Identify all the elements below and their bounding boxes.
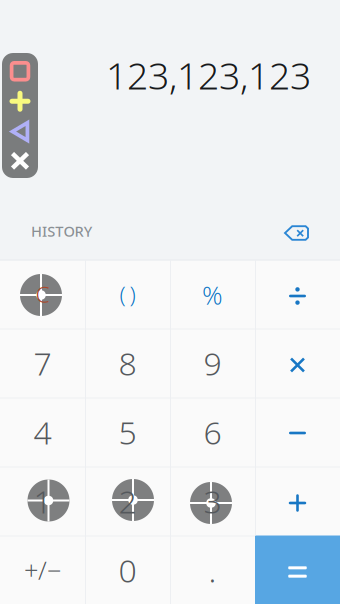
staticText: 2 xyxy=(118,480,136,522)
button[interactable]: 5 xyxy=(85,397,170,466)
staticText: 0 xyxy=(118,549,136,591)
button[interactable]: Multiply xyxy=(255,328,340,397)
staticText: C xyxy=(35,279,49,309)
staticText: 6 xyxy=(203,411,221,453)
button[interactable]: Previous xyxy=(10,121,29,142)
button[interactable]: 7 xyxy=(0,328,85,397)
button[interactable]: 1 xyxy=(0,466,85,535)
button[interactable]: Subtract xyxy=(255,397,340,466)
button[interactable]: . xyxy=(170,535,255,604)
button[interactable]: Add xyxy=(255,466,340,535)
button[interactable]: 2 xyxy=(85,466,170,535)
button[interactable]: +/− xyxy=(0,535,85,604)
button[interactable]: Clear history xyxy=(277,218,317,248)
staticText: HISTORY xyxy=(31,221,93,241)
staticText: 8 xyxy=(118,342,136,384)
button[interactable]: 3 xyxy=(170,466,255,535)
staticText: % xyxy=(202,278,223,312)
staticText: +/− xyxy=(24,553,61,587)
button[interactable]: 4 xyxy=(0,397,85,466)
staticText: 5 xyxy=(118,411,136,453)
button[interactable]: C xyxy=(0,259,85,328)
staticText: 7 xyxy=(33,342,51,384)
button[interactable]: 0 xyxy=(85,535,170,604)
staticText: ( ) xyxy=(119,279,135,309)
staticText: 3 xyxy=(203,480,221,522)
button[interactable]: ( ) xyxy=(85,259,170,328)
button[interactable]: Equals xyxy=(255,535,340,604)
staticText: 4 xyxy=(33,411,51,453)
button[interactable]: Divide xyxy=(255,259,340,328)
button[interactable]: % xyxy=(170,259,255,328)
button[interactable]: Stop recording xyxy=(9,61,30,82)
button[interactable]: 9 xyxy=(170,328,255,397)
staticText: 1 xyxy=(33,480,51,522)
button[interactable]: 8 xyxy=(85,328,170,397)
button[interactable]: Close xyxy=(10,151,30,170)
staticText: . xyxy=(208,549,216,591)
button[interactable]: Add marker xyxy=(9,91,30,112)
staticText: 123,123,123 xyxy=(106,50,311,100)
button[interactable]: 6 xyxy=(170,397,255,466)
staticText: 9 xyxy=(203,342,221,384)
